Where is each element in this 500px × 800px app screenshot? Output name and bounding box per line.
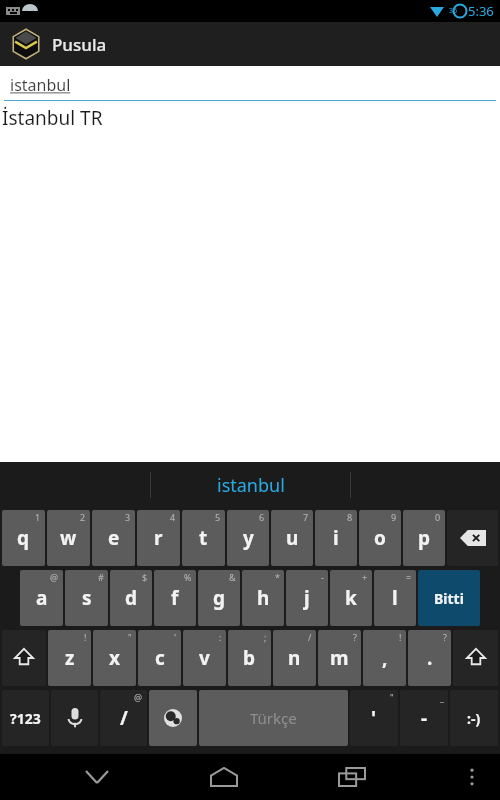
- staticText: i: [333, 525, 339, 551]
- button[interactable]: m: [318, 630, 361, 686]
- button[interactable]: t: [182, 510, 225, 566]
- button[interactable]: s: [65, 570, 108, 626]
- staticText: 1: [35, 511, 41, 523]
- staticText: _: [440, 691, 444, 703]
- button[interactable]: n: [273, 630, 316, 686]
- button[interactable]: q: [2, 510, 45, 566]
- button[interactable]: e: [92, 510, 135, 566]
- staticText: :: [219, 631, 222, 643]
- button[interactable]: d: [110, 570, 152, 626]
- button[interactable]: r: [137, 510, 180, 566]
- button[interactable]: Change language: [149, 690, 197, 746]
- staticText: !: [399, 631, 402, 643]
- staticText: f: [171, 585, 179, 611]
- staticText: ;: [264, 631, 267, 643]
- staticText: u: [286, 525, 299, 551]
- staticText: istanbul: [10, 74, 71, 96]
- staticText: 5:36: [468, 2, 494, 20]
- button[interactable]: h: [242, 570, 284, 626]
- staticText: 5: [215, 511, 221, 523]
- staticText: /: [308, 631, 312, 643]
- staticText: b: [243, 645, 256, 671]
- staticText: j: [304, 585, 310, 611]
- button[interactable]: istanbul: [0, 66, 500, 100]
- staticText: x: [109, 645, 120, 671]
- staticText: 3: [125, 511, 131, 523]
- staticText: @: [50, 571, 59, 583]
- staticText: n: [288, 645, 301, 671]
- staticText: =: [406, 571, 412, 583]
- staticText: s: [82, 585, 92, 611]
- staticText: a: [36, 585, 48, 611]
- button[interactable]: More options: [450, 754, 494, 800]
- button[interactable]: istanbul: [151, 462, 350, 508]
- staticText: d: [125, 585, 138, 611]
- button[interactable]: p: [403, 510, 445, 566]
- button[interactable]: Backspace: [447, 510, 498, 566]
- staticText: v: [199, 645, 210, 671]
- button[interactable]: z: [48, 630, 91, 686]
- button[interactable]: v: [183, 630, 226, 686]
- button[interactable]: ': [350, 690, 398, 746]
- staticText: 9: [391, 511, 397, 523]
- staticText: h: [257, 585, 270, 611]
- staticText: 36: [449, 6, 458, 16]
- staticText: ?: [353, 631, 357, 643]
- staticText: ': [371, 705, 377, 731]
- button[interactable]: k: [330, 570, 372, 626]
- button[interactable]: Shift: [2, 630, 46, 686]
- button[interactable]: o: [359, 510, 401, 566]
- staticText: l: [392, 585, 398, 611]
- staticText: e: [108, 525, 120, 551]
- staticText: &: [229, 571, 236, 583]
- button[interactable]: u: [271, 510, 313, 566]
- staticText: 0: [435, 511, 441, 523]
- button[interactable]: c: [138, 630, 181, 686]
- staticText: /: [120, 705, 128, 731]
- button[interactable]: Bitti: [418, 570, 480, 626]
- button[interactable]: ?123: [2, 690, 49, 746]
- staticText: $: [142, 571, 148, 583]
- staticText: t: [199, 525, 208, 551]
- button[interactable]: ,: [363, 630, 406, 686]
- button[interactable]: w: [47, 510, 90, 566]
- staticText: q: [17, 525, 30, 551]
- staticText: c: [155, 645, 165, 671]
- staticText: İstanbul TR: [2, 105, 103, 131]
- button[interactable]: a: [20, 570, 63, 626]
- button[interactable]: :-): [450, 690, 498, 746]
- staticText: Bitti: [434, 589, 464, 608]
- staticText: ": [128, 631, 132, 643]
- staticText: o: [374, 525, 386, 551]
- button[interactable]: y: [227, 510, 269, 566]
- staticText: %: [184, 571, 192, 583]
- button[interactable]: Recent apps: [322, 754, 382, 800]
- button[interactable]: Home: [194, 754, 254, 800]
- button[interactable]: f: [154, 570, 196, 626]
- button[interactable]: Voice input: [51, 690, 98, 746]
- button[interactable]: b: [228, 630, 271, 686]
- button[interactable]: l: [374, 570, 416, 626]
- staticText: @: [134, 691, 143, 703]
- staticText: !: [84, 631, 87, 643]
- button[interactable]: g: [198, 570, 240, 626]
- staticText: Türkçe: [250, 708, 297, 728]
- button[interactable]: j: [286, 570, 328, 626]
- button[interactable]: Hide keyboard: [67, 754, 127, 800]
- staticText: p: [418, 525, 431, 551]
- staticText: m: [330, 645, 349, 671]
- staticText: ?: [443, 631, 447, 643]
- staticText: y: [243, 525, 254, 551]
- button[interactable]: x: [93, 630, 136, 686]
- button[interactable]: Shift: [453, 630, 498, 686]
- staticText: 2: [80, 511, 86, 523]
- staticText: ,: [382, 645, 388, 671]
- button[interactable]: i: [315, 510, 357, 566]
- button[interactable]: İstanbul TR: [0, 104, 500, 132]
- button[interactable]: -: [400, 690, 448, 746]
- button[interactable]: Türkçe: [199, 690, 348, 746]
- staticText: 8: [347, 511, 353, 523]
- button[interactable]: /: [100, 690, 147, 746]
- staticText: .: [427, 645, 433, 671]
- button[interactable]: .: [408, 630, 451, 686]
